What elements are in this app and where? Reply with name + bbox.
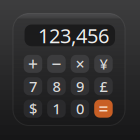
button[interactable]: −	[47, 55, 66, 73]
button[interactable]: 1	[47, 100, 66, 118]
button[interactable]: ¥	[94, 55, 113, 73]
button[interactable]: 9	[71, 77, 89, 95]
staticText: −	[51, 52, 61, 75]
staticText: 123,456	[38, 22, 109, 49]
button[interactable]: +	[24, 55, 42, 73]
staticText: £	[99, 76, 107, 96]
staticText: 8	[52, 76, 60, 96]
staticText: 7	[29, 76, 37, 96]
staticText: 9	[76, 76, 84, 96]
button[interactable]: 0	[71, 100, 89, 118]
staticText: 1	[52, 99, 60, 118]
staticText: $	[29, 99, 37, 118]
staticText: =	[98, 97, 108, 120]
button[interactable]: 7	[24, 77, 42, 95]
button[interactable]: =	[94, 100, 113, 118]
staticText: 0	[76, 99, 84, 118]
staticText: +	[28, 52, 38, 75]
button[interactable]: £	[94, 77, 113, 95]
staticText: ¥	[99, 54, 107, 74]
button[interactable]: ×	[71, 55, 89, 73]
button[interactable]: 8	[47, 77, 66, 95]
button[interactable]: $	[24, 100, 42, 118]
staticText: ×	[75, 53, 84, 74]
